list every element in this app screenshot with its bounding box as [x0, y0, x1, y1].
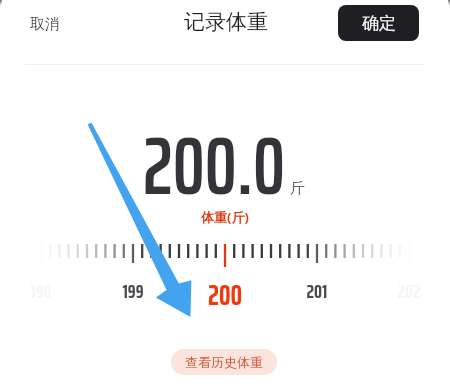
- staticText: 200.0: [143, 103, 285, 229]
- staticText: 斤: [290, 179, 305, 198]
- staticText: 体重(斤): [201, 208, 249, 226]
- staticText: 200: [175, 272, 275, 318]
- staticText: 201: [277, 275, 357, 306]
- button[interactable]: 确定: [338, 5, 419, 41]
- button[interactable]: 取消: [22, 8, 68, 41]
- staticText: 取消: [30, 15, 60, 34]
- staticText: 确定: [362, 13, 396, 34]
- staticText: 查看历史体重: [185, 354, 263, 370]
- staticText: 记录体重: [184, 9, 268, 35]
- staticText: 199: [93, 275, 173, 306]
- button[interactable]: 查看历史体重: [171, 349, 277, 375]
